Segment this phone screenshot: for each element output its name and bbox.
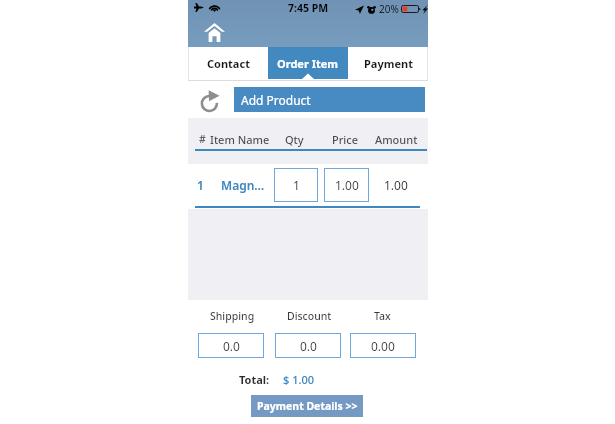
staticText: Order Item [277, 56, 339, 71]
staticText: Amount [375, 132, 418, 147]
button[interactable]: Contact [188, 47, 268, 79]
staticText: Payment Details >> [257, 399, 358, 413]
button[interactable]: Payment Details >> [251, 395, 363, 417]
staticText: 1.00 [335, 177, 359, 193]
staticText: 1 [293, 177, 300, 193]
button[interactable]: 0.00 [350, 333, 416, 358]
staticText: 20% [379, 2, 399, 16]
staticText: $ 1.00 [283, 372, 315, 387]
button[interactable]: Add Product [234, 87, 425, 112]
staticText: 0.00 [371, 338, 395, 354]
staticText: 1 [197, 177, 204, 193]
staticText: Contact [207, 56, 250, 71]
staticText: Add Product [241, 92, 311, 108]
staticText: Total: [239, 372, 270, 387]
staticText: Discount [287, 309, 332, 323]
staticText: 1.00 [384, 177, 408, 193]
staticText: 0.0 [300, 338, 317, 354]
staticText: Shipping [210, 309, 255, 323]
staticText: Qty [285, 132, 304, 147]
button[interactable]: 1.00 [324, 168, 369, 202]
staticText: 7:45 PM [288, 1, 329, 15]
button[interactable]: Order Item [268, 47, 348, 79]
button[interactable]: Refresh [198, 87, 224, 113]
button[interactable]: 0.0 [198, 333, 264, 358]
button[interactable]: Home [201, 19, 227, 45]
staticText: Magn… [221, 177, 265, 193]
button[interactable]: 1 [274, 168, 318, 202]
staticText: Tax [374, 309, 391, 323]
staticText: # [199, 132, 206, 146]
staticText: Item Name [210, 132, 270, 147]
staticText: Payment [364, 56, 413, 71]
staticText: 0.0 [223, 338, 240, 354]
button[interactable]: 0.0 [275, 333, 341, 358]
staticText: Price [332, 132, 359, 147]
button[interactable]: Payment [348, 47, 428, 79]
